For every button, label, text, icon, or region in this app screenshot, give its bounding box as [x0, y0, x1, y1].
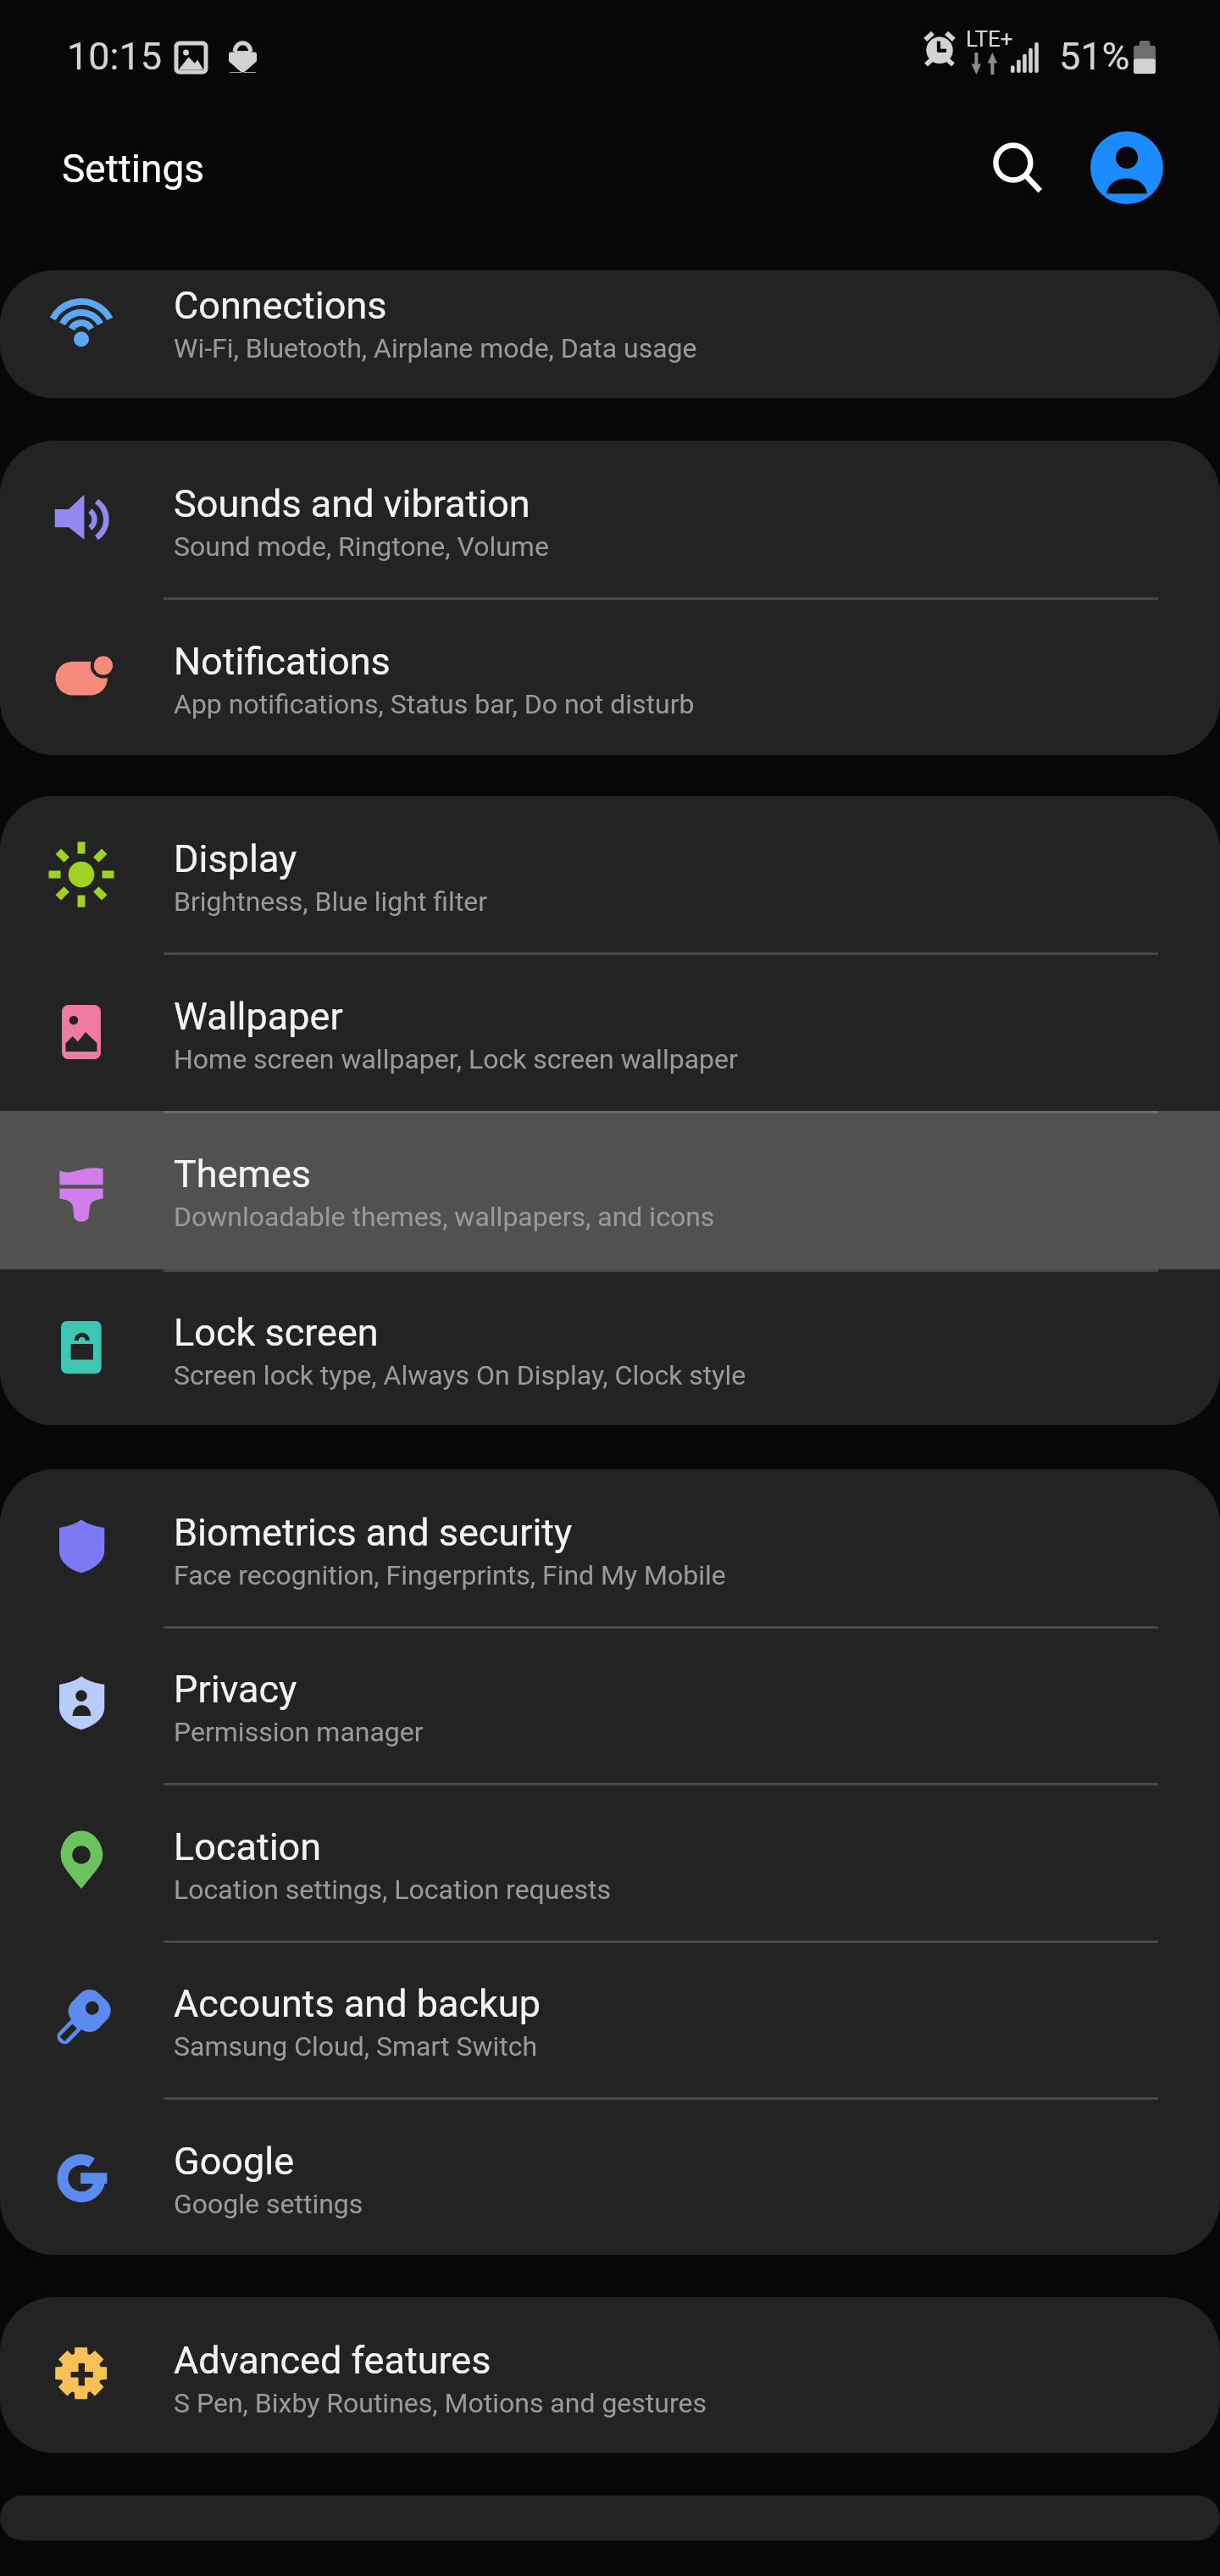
staticText: LTE+ [966, 26, 1013, 52]
button[interactable]: Sounds and vibration [0, 441, 1220, 598]
staticText: Google [174, 2139, 295, 2184]
staticText: Permission manager [174, 1716, 424, 1748]
staticText: Display [174, 836, 297, 881]
button[interactable]: Connections [0, 242, 1220, 400]
staticText: Privacy [174, 1667, 297, 1712]
staticText: Advanced features [174, 2338, 491, 2383]
button[interactable]: Biometrics and security [0, 1469, 1220, 1626]
button[interactable]: Search [976, 126, 1061, 211]
staticText: Brightness, Blue light filter [174, 885, 488, 918]
staticText: Themes [174, 1152, 312, 1196]
staticText: Face recognition, Fingerprints, Find My … [174, 1559, 726, 1591]
staticText: App notifications, Status bar, Do not di… [174, 688, 695, 720]
staticText: Wallpaper [174, 994, 343, 1039]
button[interactable]: Themes [0, 1111, 1220, 1269]
staticText: Sound mode, Ringtone, Volume [174, 530, 549, 563]
staticText: Location [174, 1824, 322, 1869]
button[interactable]: Notifications [0, 598, 1220, 756]
staticText: Samsung Cloud, Smart Switch [174, 2030, 538, 2062]
button[interactable]: Location [0, 1784, 1220, 1940]
staticText: Home screen wallpaper, Lock screen wallp… [174, 1043, 738, 1075]
staticText: Biometrics and security [174, 1510, 573, 1555]
button[interactable]: Privacy [0, 1626, 1220, 1783]
staticText: Accounts and backup [174, 1981, 541, 2026]
button[interactable]: Lock screen [0, 1269, 1220, 1425]
staticText: 10:15 [67, 34, 163, 79]
button[interactable]: Display [0, 796, 1220, 953]
button[interactable]: Wallpaper [0, 953, 1220, 1111]
button[interactable]: Accounts and backup [0, 1940, 1220, 2097]
button[interactable]: Account [1084, 125, 1169, 210]
staticText: Downloadable themes, wallpapers, and ico… [174, 1201, 715, 1233]
staticText: S Pen, Bixby Routines, Motions and gestu… [174, 2387, 707, 2419]
staticText: 51% [1059, 34, 1130, 79]
staticText: Lock screen [174, 1310, 379, 1355]
staticText: Settings [62, 146, 204, 192]
button[interactable]: Google [0, 2098, 1220, 2255]
staticText: Connections [174, 283, 387, 328]
staticText: Wi-Fi, Bluetooth, Airplane mode, Data us… [174, 332, 697, 364]
staticText: Screen lock type, Always On Display, Clo… [174, 1359, 746, 1391]
staticText: Google settings [174, 2188, 363, 2220]
staticText: Notifications [174, 639, 391, 684]
staticText: Sounds and vibration [174, 481, 530, 526]
staticText: Location settings, Location requests [174, 1874, 611, 1906]
button[interactable]: Advanced features [0, 2297, 1220, 2453]
